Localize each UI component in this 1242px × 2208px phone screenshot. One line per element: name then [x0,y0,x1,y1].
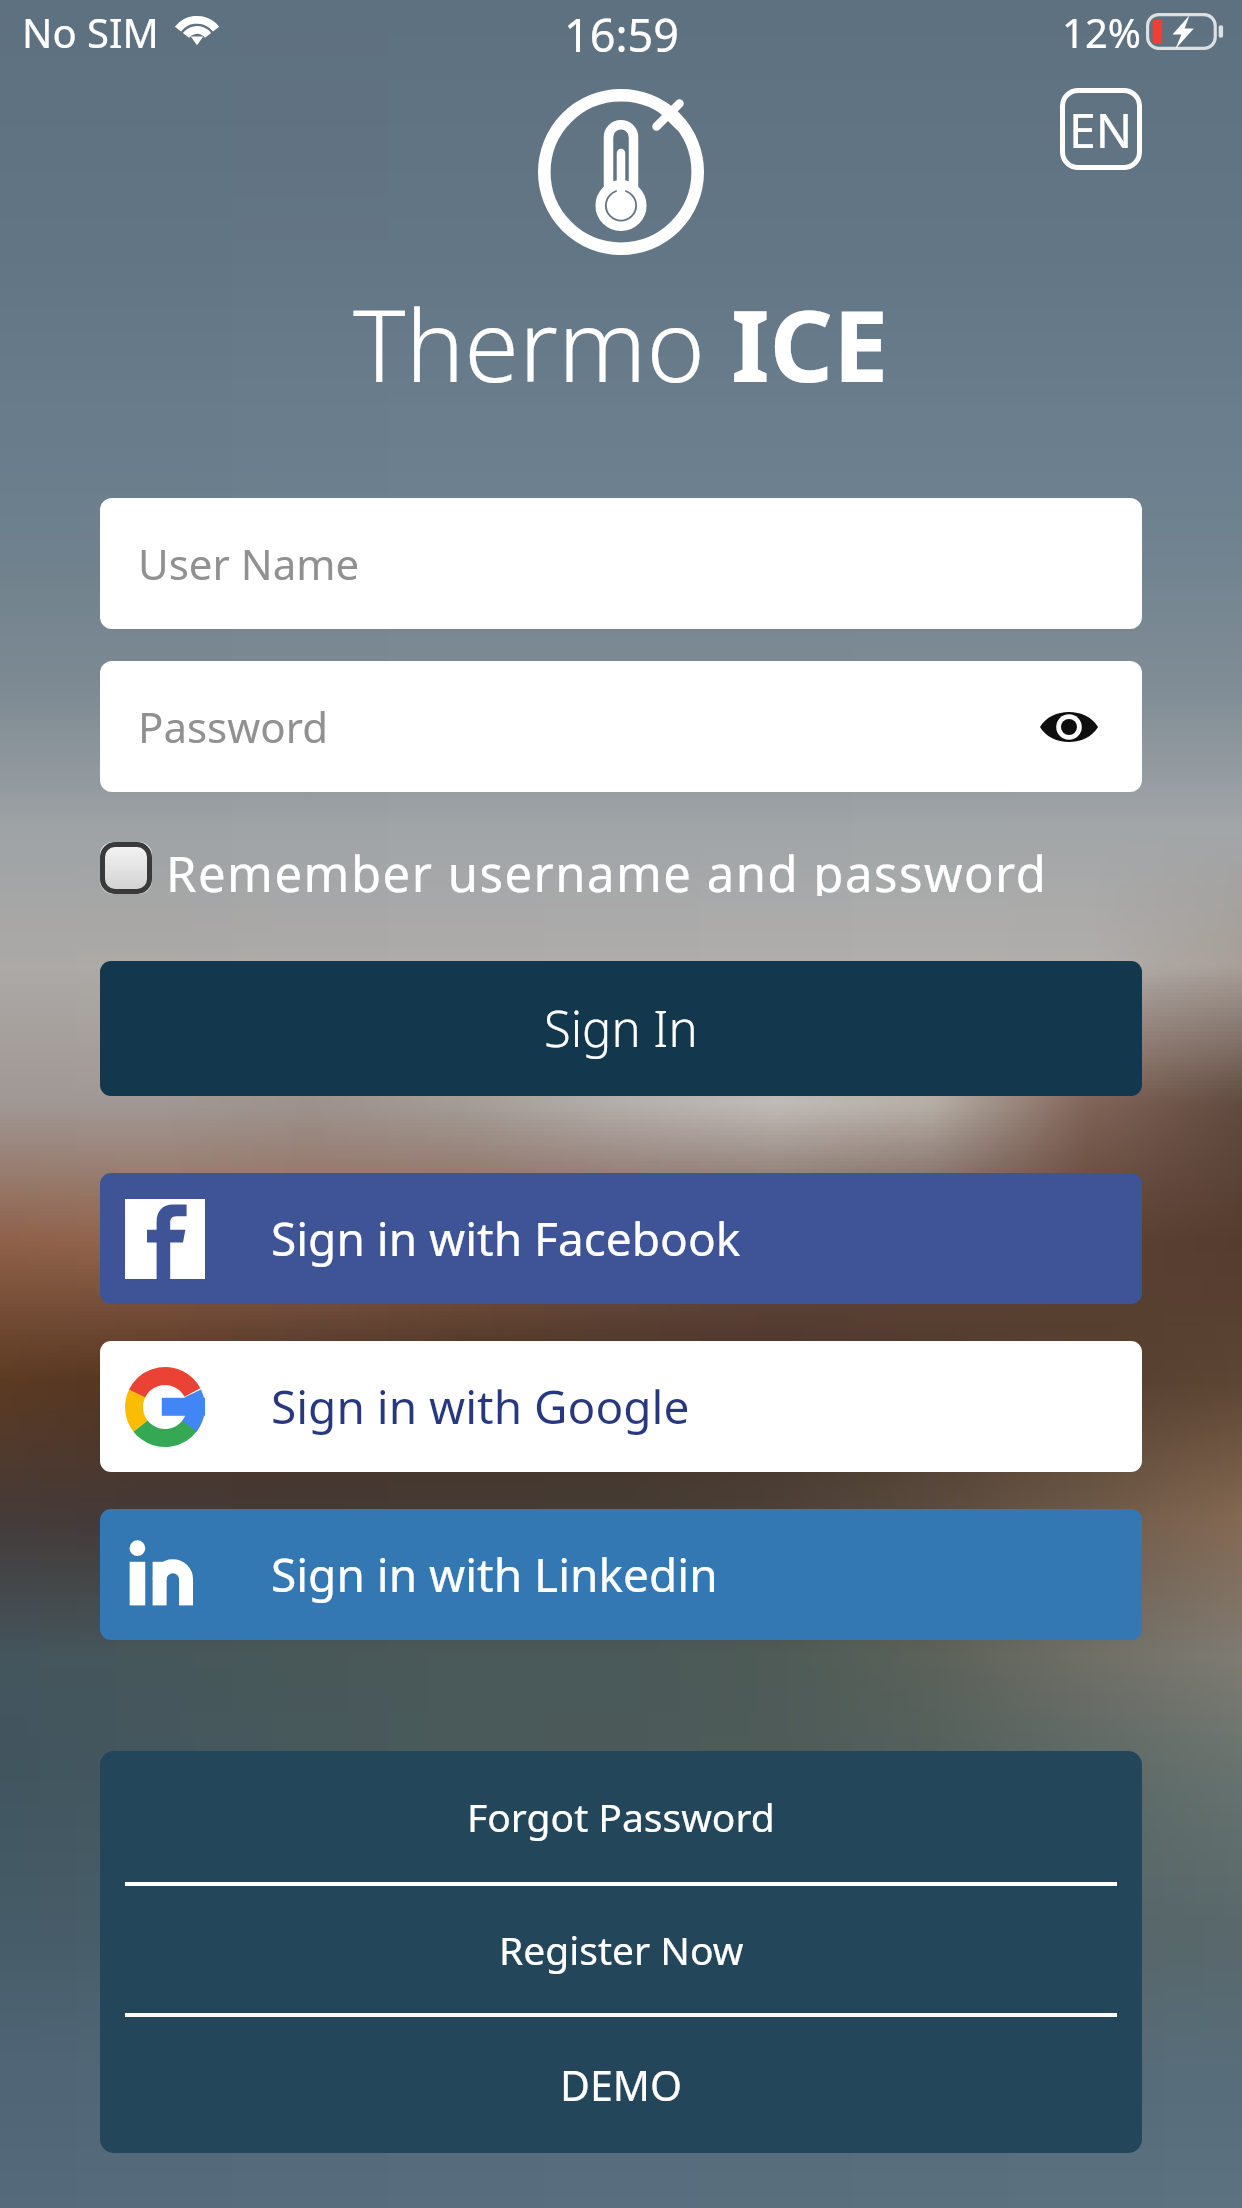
staticText: Thermo [353,276,731,411]
button[interactable]: Change language EN [1060,88,1142,170]
staticText: Sign in with Facebook [271,1207,741,1270]
staticText: No SIM [22,5,159,59]
button[interactable]: Sign in with Facebook [100,1173,1142,1304]
staticText: 16:59 [564,4,680,65]
staticText: Sign in with Google [271,1375,690,1438]
button[interactable]: Sign in with Linkedin [100,1509,1142,1640]
staticText: 12% [1062,5,1141,59]
staticText: EN [1069,97,1133,162]
button[interactable]: Sign in with Google [100,1341,1142,1472]
button[interactable]: Password [100,661,1142,792]
staticText: Password [138,698,328,755]
staticText: User Name [138,535,360,592]
staticText: ICE [731,276,889,411]
button[interactable]: Register Now [100,1886,1142,2013]
staticText: Remember username and password [166,840,1048,896]
staticText: Register Now [499,1923,744,1976]
button[interactable]: Forgot Password [100,1751,1142,1882]
staticText: Forgot Password [467,1790,775,1843]
staticText: Sign In [544,995,698,1062]
button[interactable]: DEMO [100,2017,1142,2153]
button[interactable]: Sign In [100,961,1142,1096]
staticText: Sign in with Linkedin [271,1543,718,1606]
button[interactable]: Show password [1034,692,1104,762]
button[interactable]: Remember username and password [100,840,1048,896]
button[interactable]: User Name [100,498,1142,629]
staticText: DEMO [560,2057,682,2113]
